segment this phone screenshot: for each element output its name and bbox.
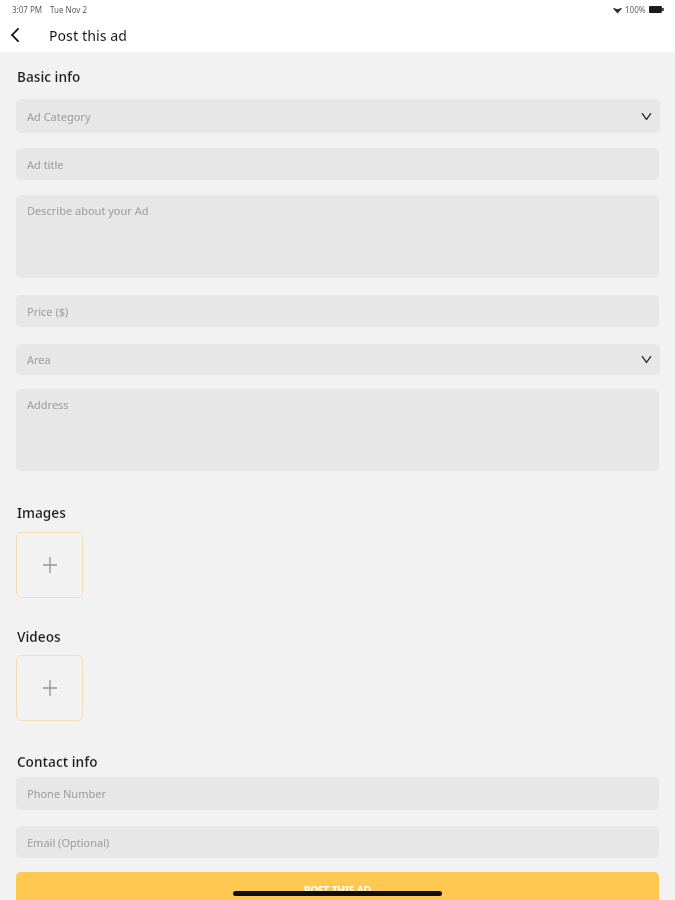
staticText: 3:07 PM [12, 4, 43, 15]
button[interactable]: Ad title [16, 148, 659, 180]
staticText: Tue Nov 2 [50, 4, 88, 15]
button[interactable]: POST THIS AD [16, 872, 659, 900]
staticText: Basic info [17, 68, 81, 86]
button[interactable]: Price ($) [16, 295, 659, 327]
staticText: Ad title [27, 157, 64, 172]
button[interactable]: Ad Category [16, 99, 660, 133]
staticText: 100% [625, 4, 646, 15]
button[interactable]: Describe about your Ad [16, 195, 659, 278]
staticText: Email (Optional) [27, 835, 110, 850]
staticText: Images [17, 504, 66, 522]
staticText: Post this ad [49, 26, 127, 45]
staticText: Address [27, 397, 69, 412]
staticText: Ad Category [27, 109, 91, 124]
button[interactable]: Add video [16, 655, 83, 721]
button[interactable]: Add image [16, 532, 83, 598]
staticText: POST THIS AD [304, 883, 371, 897]
staticText: Price ($) [27, 304, 69, 319]
staticText: Videos [17, 628, 61, 646]
button[interactable]: Back [0, 18, 34, 52]
button[interactable]: Email (Optional) [16, 826, 659, 858]
staticText: Describe about your Ad [27, 203, 149, 218]
button[interactable]: Area [16, 344, 660, 375]
staticText: Contact info [17, 753, 98, 771]
staticText: Phone Number [27, 786, 106, 801]
button[interactable]: Phone Number [16, 777, 659, 810]
staticText: Area [27, 352, 51, 367]
